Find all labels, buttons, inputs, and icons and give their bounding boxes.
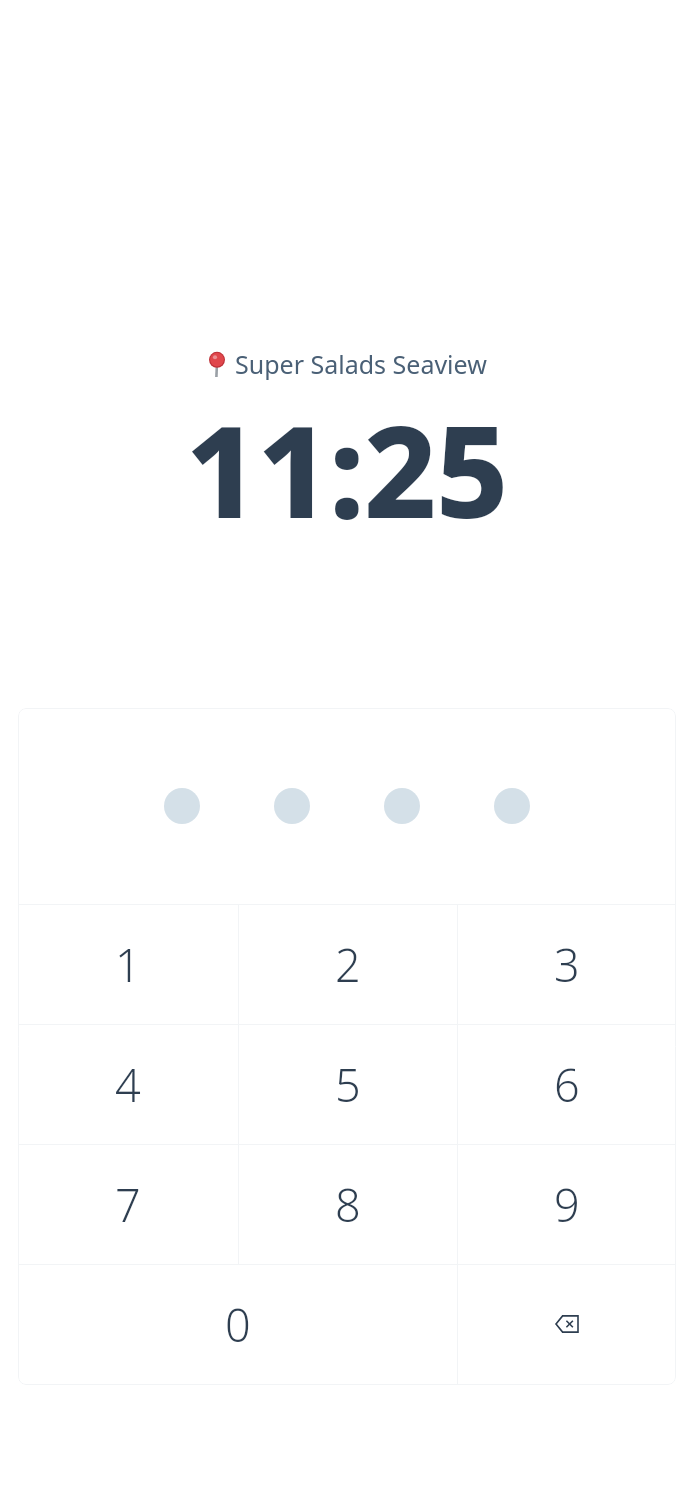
staticText: 5 [335, 1054, 361, 1115]
button[interactable]: 3 [457, 904, 676, 1024]
button[interactable]: 0 [18, 1264, 457, 1384]
button[interactable]: Backspace [457, 1264, 676, 1384]
button[interactable]: 4 [18, 1024, 238, 1144]
staticText: 2 [335, 934, 361, 995]
staticText: 1 [115, 934, 141, 995]
button[interactable]: 1 [18, 904, 238, 1024]
staticText: 11:25 [185, 383, 508, 555]
staticText: Super Salads Seaview [235, 347, 487, 381]
staticText: 7 [115, 1174, 141, 1235]
staticText: 3 [554, 934, 580, 995]
staticText: 4 [115, 1054, 141, 1115]
button[interactable]: 6 [457, 1024, 676, 1144]
button[interactable]: 7 [18, 1144, 238, 1264]
button[interactable]: 2 [238, 904, 457, 1024]
staticText: 6 [554, 1054, 580, 1115]
staticText: 8 [335, 1174, 361, 1235]
button[interactable]: 5 [238, 1024, 457, 1144]
staticText: 9 [554, 1174, 580, 1235]
button[interactable]: 9 [457, 1144, 676, 1264]
button[interactable]: 8 [238, 1144, 457, 1264]
staticText: 0 [225, 1294, 251, 1355]
